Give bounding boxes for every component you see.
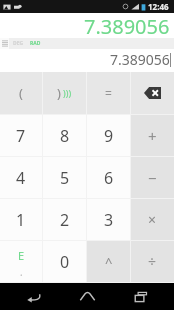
staticText: ) [57, 84, 61, 102]
staticText: E [18, 248, 25, 263]
button[interactable]: 2 [43, 199, 86, 240]
button[interactable]: 9 [87, 115, 130, 156]
staticText: ÷ [148, 252, 157, 271]
staticText: 8 [60, 125, 70, 147]
button[interactable]: Recent apps [121, 283, 161, 310]
staticText: 3 [104, 209, 114, 231]
staticText: = [105, 85, 112, 101]
staticText: ( [19, 84, 23, 102]
staticText: 1 [16, 209, 26, 231]
button[interactable]: History drawer [0, 38, 9, 49]
staticText: 7.389056 [84, 13, 170, 38]
staticText: 7.389056 [110, 50, 170, 69]
button[interactable]: ÷ [131, 241, 174, 282]
button[interactable]: 5 [43, 157, 86, 198]
button[interactable]: + [131, 115, 174, 156]
staticText: 5 [60, 167, 70, 189]
staticText: × [148, 210, 157, 229]
button[interactable]: Exponent and decimal point [0, 241, 42, 282]
button[interactable]: Backspace [131, 72, 174, 114]
staticText: 9 [104, 125, 114, 147]
button[interactable]: 6 [87, 157, 130, 198]
staticText: + [148, 126, 157, 146]
button[interactable]: 8 [43, 115, 86, 156]
staticText: 4 [16, 167, 26, 189]
button[interactable]: 3 [87, 199, 130, 240]
button[interactable]: DEG [12, 40, 25, 47]
staticText: − [148, 168, 157, 188]
button[interactable]: RAD [29, 40, 42, 47]
staticText: RAD [30, 40, 41, 47]
staticText: ^ [105, 253, 113, 271]
staticText: DEG [13, 40, 24, 47]
button[interactable]: × [131, 199, 174, 240]
button[interactable]: ( [0, 72, 42, 114]
button[interactable]: 7 [0, 115, 42, 156]
staticText: ))) [63, 87, 72, 99]
staticText: 2 [60, 209, 70, 231]
button[interactable]: 0 [43, 241, 86, 282]
staticText: 0 [60, 251, 70, 273]
button[interactable]: 1 [0, 199, 42, 240]
button[interactable]: 4 [0, 157, 42, 198]
staticText: 12:46 [148, 1, 169, 12]
staticText: 6 [104, 167, 114, 189]
button[interactable]: − [131, 157, 174, 198]
button[interactable]: = [87, 72, 130, 114]
button[interactable]: Home [67, 283, 107, 310]
button[interactable]: Back [14, 283, 54, 310]
staticText: . [20, 265, 23, 279]
button[interactable]: Close parenthesis [43, 72, 86, 114]
staticText: 7 [16, 125, 26, 147]
button[interactable]: ^ [87, 241, 130, 282]
